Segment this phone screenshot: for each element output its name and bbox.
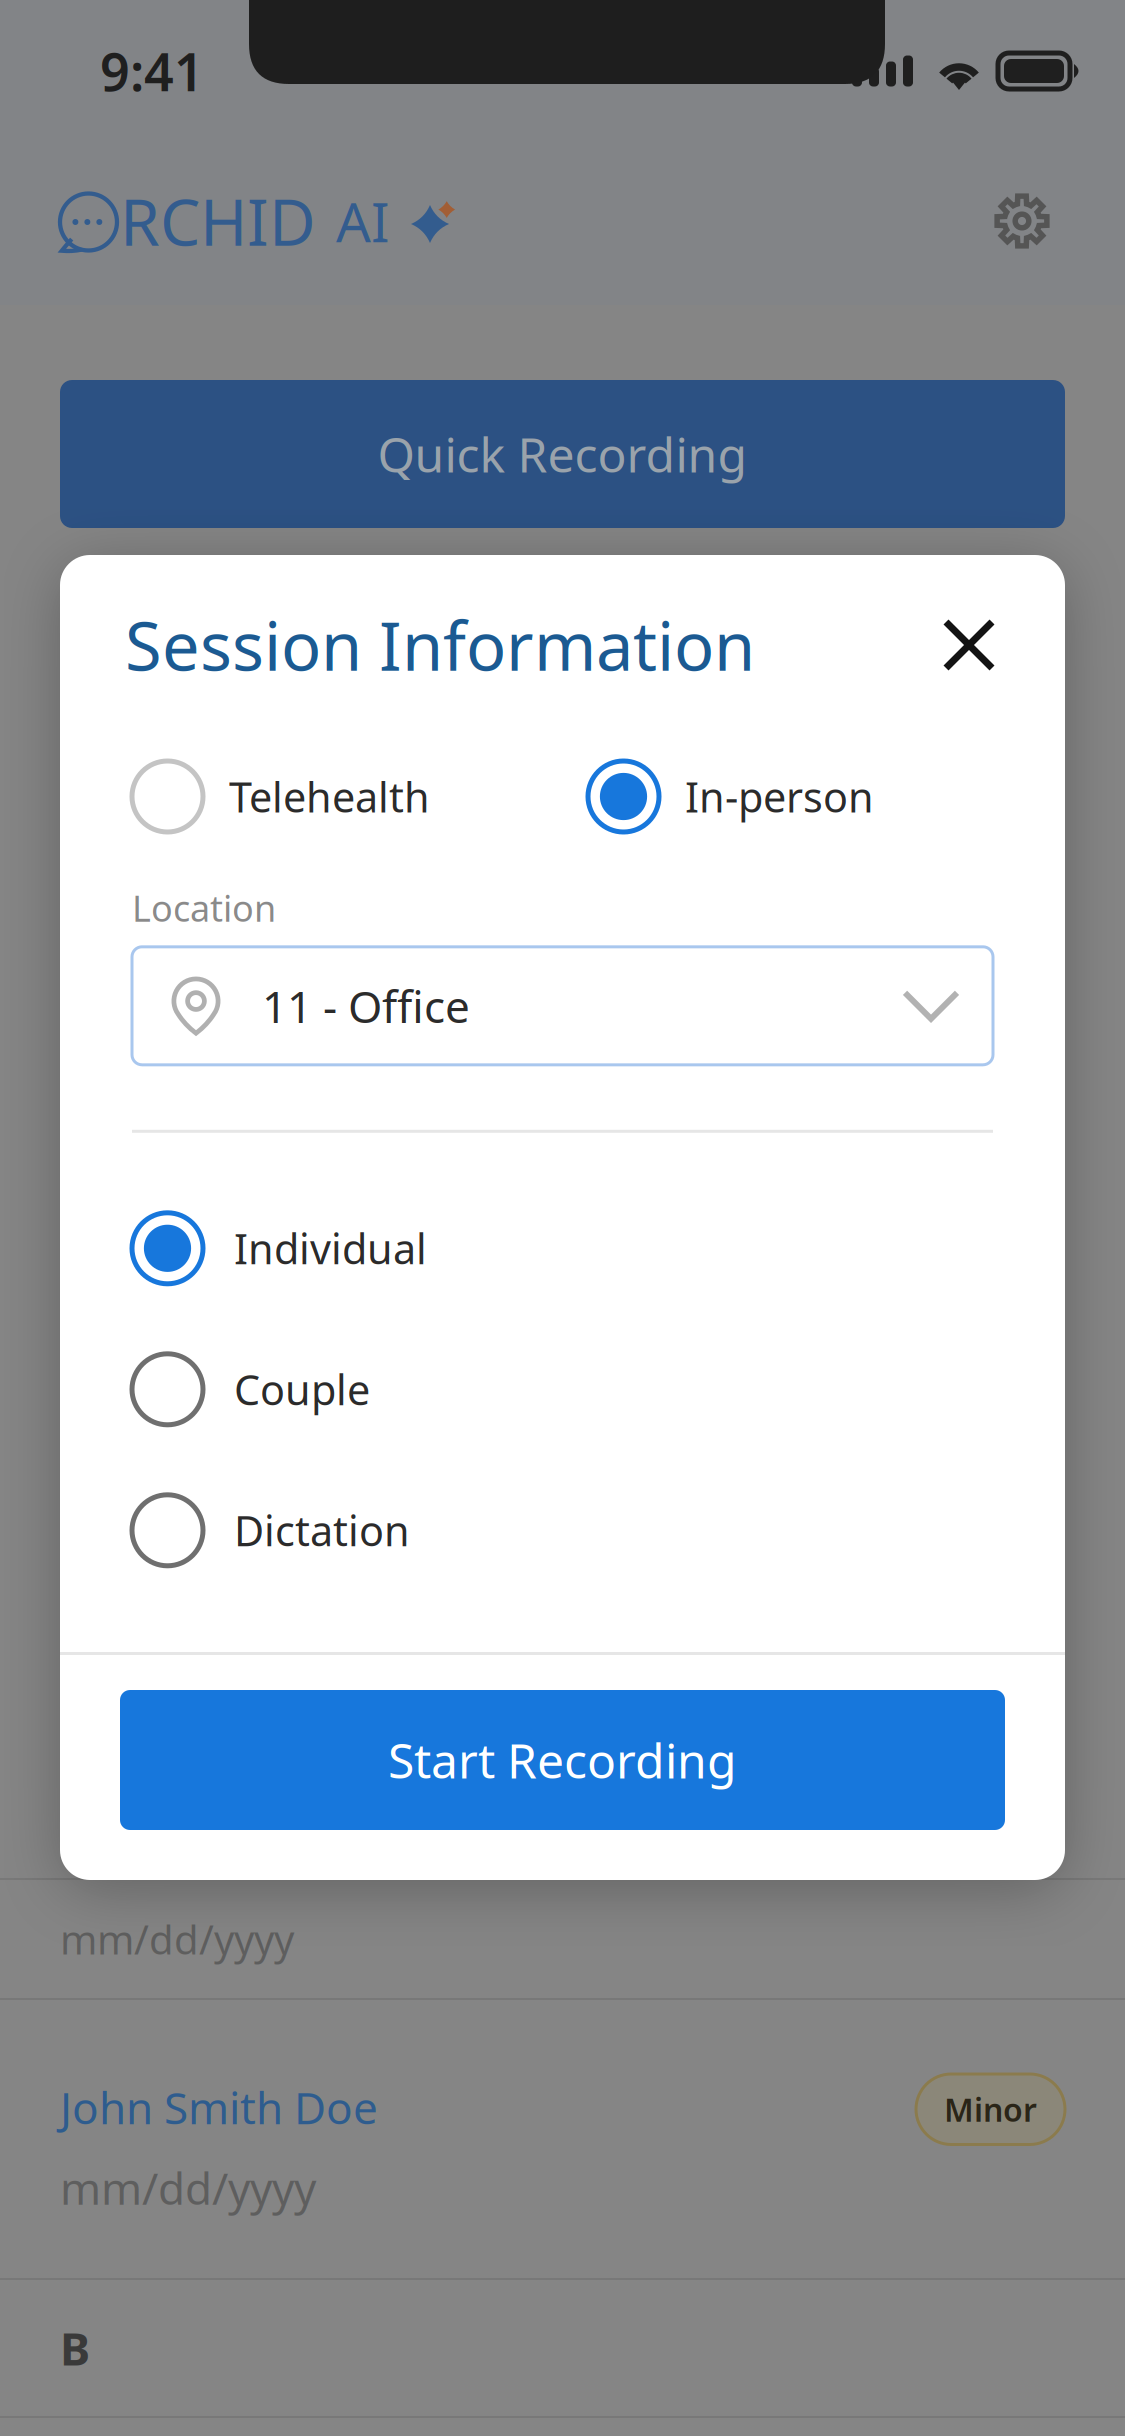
staticText: 11 - Office <box>262 977 470 1035</box>
button[interactable]: Telehealth <box>132 761 588 832</box>
button[interactable]: Dictation <box>132 1460 993 1601</box>
staticText: B <box>60 2318 90 2378</box>
staticText: Quick Recording <box>377 422 747 486</box>
staticText: Telehealth <box>229 769 430 824</box>
button[interactable]: John Smith Doe <box>0 2000 1125 2278</box>
staticText: Session Information <box>125 601 755 689</box>
staticText: Individual <box>234 1221 427 1276</box>
staticText: AI <box>336 185 390 257</box>
button[interactable]: Start Recording <box>120 1690 1005 1830</box>
staticText: RCHID <box>120 178 316 263</box>
button[interactable]: Quick Recording <box>60 380 1065 528</box>
button[interactable]: 11 - Office <box>132 947 993 1065</box>
button[interactable]: Individual <box>132 1178 993 1319</box>
staticText: mm/dd/yyyy <box>60 1912 294 1965</box>
staticText: Start Recording <box>388 1728 737 1792</box>
staticText: Dictation <box>234 1503 410 1558</box>
staticText: Location <box>132 884 276 932</box>
staticText: Couple <box>234 1362 370 1417</box>
staticText: mm/dd/yyyy <box>60 2158 316 2217</box>
staticText: Minor <box>944 2088 1037 2130</box>
button[interactable]: Settings <box>979 178 1065 264</box>
button[interactable]: Couple <box>132 1319 993 1460</box>
staticText: In-person <box>685 769 874 824</box>
staticText: John Smith Doe <box>60 2078 378 2136</box>
staticText: 9:41 <box>100 36 204 106</box>
button[interactable]: mm/dd/yyyy <box>0 1880 1125 1998</box>
button[interactable]: Close <box>926 602 1012 688</box>
button[interactable]: In-person <box>588 761 988 832</box>
